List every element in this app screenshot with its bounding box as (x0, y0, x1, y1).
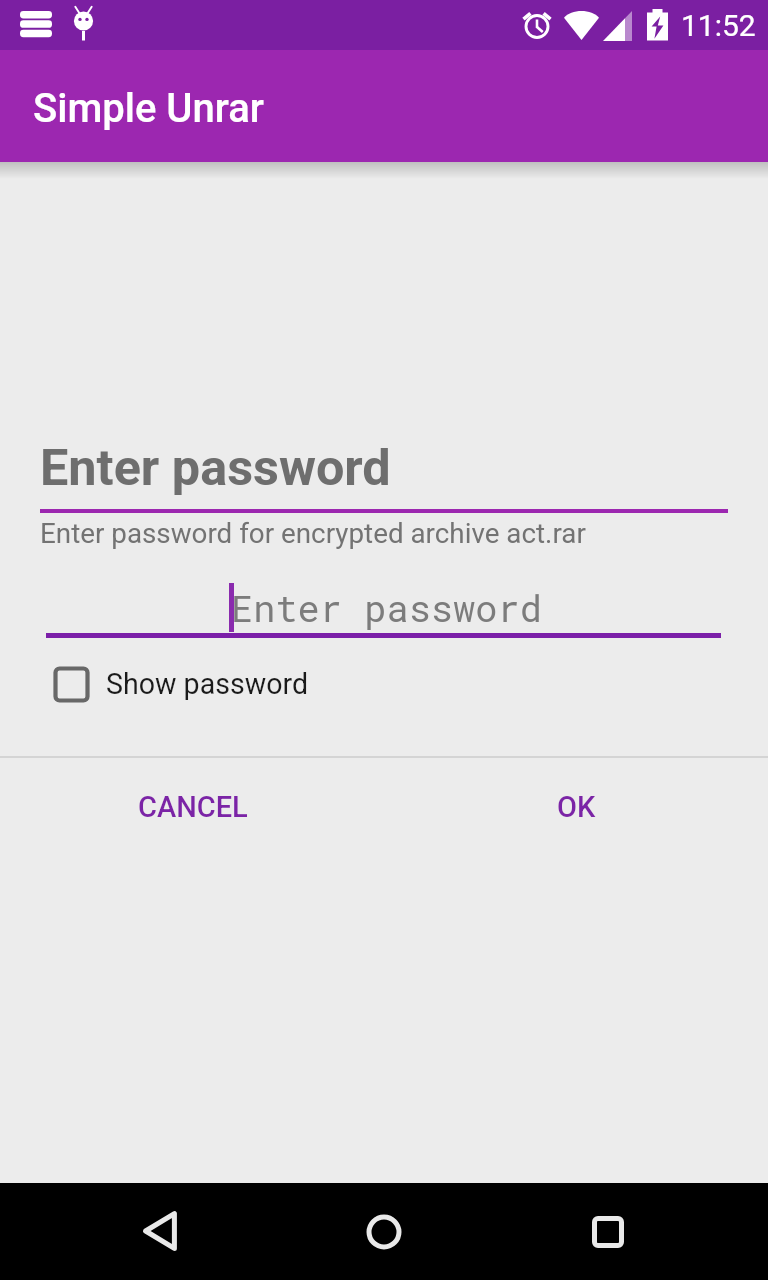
button[interactable]: OK (521, 772, 631, 842)
button[interactable]: Show password (40, 654, 323, 714)
staticText: OK (557, 790, 596, 824)
staticText: CANCEL (138, 790, 248, 824)
button[interactable]: Back (124, 1195, 196, 1267)
staticText: Simple Unrar (33, 85, 264, 132)
staticText: Enter password (231, 583, 542, 632)
button[interactable]: Recents (572, 1196, 644, 1268)
button[interactable]: Enter password (46, 577, 721, 637)
staticText: Enter password for encrypted archive act… (40, 517, 586, 550)
button[interactable]: Home (348, 1196, 420, 1268)
staticText: Enter password (40, 438, 391, 497)
staticText: Show password (106, 667, 309, 701)
staticText: 11:52 (681, 8, 756, 43)
button[interactable]: CANCEL (115, 772, 270, 842)
